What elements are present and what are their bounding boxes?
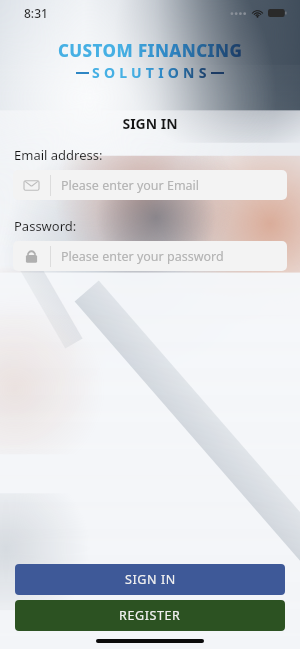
staticText: Please enter your Email — [61, 177, 200, 194]
button[interactable]: Password — [13, 241, 287, 271]
staticText: SIGN IN — [125, 571, 176, 588]
other: Password — [25, 249, 38, 264]
staticText: SOLUTIONS — [92, 63, 211, 82]
button[interactable]: REGISTER — [15, 600, 285, 631]
staticText: CUSTOM FINANCING — [58, 39, 243, 62]
staticText: Please enter your password — [61, 248, 224, 265]
button[interactable]: SIGN IN — [15, 564, 285, 595]
staticText: Password: — [14, 217, 77, 235]
staticText: SIGN IN — [0, 114, 300, 133]
other: Email — [24, 178, 39, 193]
staticText: REGISTER — [119, 607, 181, 624]
staticText: 8:31 — [24, 5, 48, 21]
staticText: Email address: — [14, 146, 103, 164]
button[interactable]: Email — [13, 170, 287, 200]
